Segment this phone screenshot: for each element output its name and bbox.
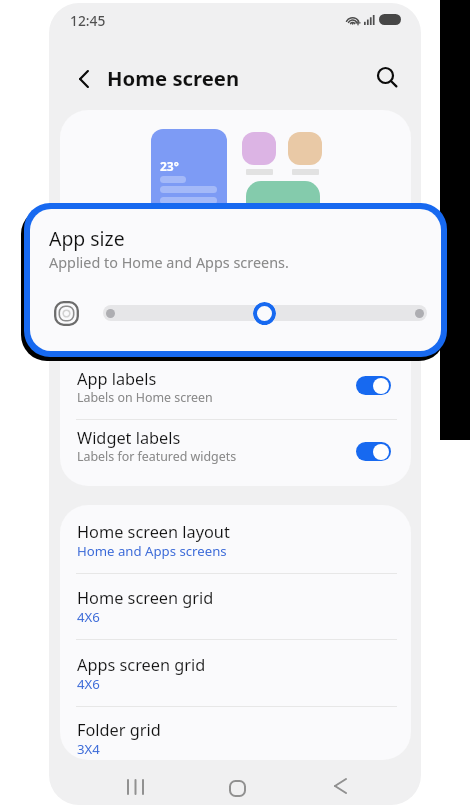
staticText: 4X6 — [77, 675, 100, 693]
staticText: Home and Apps screens — [77, 542, 227, 560]
staticText: App size — [49, 225, 125, 251]
staticText: Apps screen grid — [77, 654, 206, 676]
staticText: Labels on Home screen — [77, 389, 213, 406]
button[interactable]: Back — [313, 764, 367, 805]
staticText: 3X4 — [77, 740, 100, 758]
staticText: 12:45 — [70, 11, 106, 30]
button[interactable]: Widget labels — [60, 418, 411, 470]
button[interactable]: Apps screen grid — [60, 645, 411, 697]
button[interactable]: App labels — [60, 359, 411, 411]
staticText: Home screen layout — [77, 521, 230, 543]
staticText: Applied to Home and Apps screens. — [49, 253, 289, 273]
staticText: App labels — [77, 368, 157, 390]
button[interactable]: Folder grid — [60, 710, 411, 760]
button[interactable]: Search — [367, 57, 407, 97]
button[interactable]: Back — [64, 59, 104, 99]
button[interactable]: Home — [210, 766, 264, 805]
staticText: Widget labels — [77, 427, 181, 449]
button[interactable]: App size — [30, 209, 441, 351]
button[interactable]: Home screen layout — [60, 512, 411, 564]
staticText: 23° — [160, 158, 179, 174]
staticText: Folder grid — [77, 719, 161, 741]
staticText: Home screen — [107, 64, 240, 92]
button[interactable]: Recents — [108, 765, 162, 805]
staticText: 4X6 — [77, 608, 100, 626]
button[interactable]: Home screen grid — [60, 578, 411, 630]
staticText: Labels for featured widgets — [77, 448, 237, 465]
staticText: Home screen grid — [77, 587, 214, 609]
